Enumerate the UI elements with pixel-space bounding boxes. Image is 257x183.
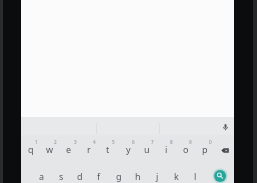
staticText: 1 <box>35 139 38 145</box>
staticText: i <box>165 143 168 155</box>
button[interactable]: g <box>110 168 128 183</box>
button[interactable]: l <box>186 168 204 183</box>
button[interactable]: j <box>148 168 166 183</box>
button[interactable]: w <box>41 141 59 157</box>
staticText: t <box>106 143 110 155</box>
staticText: u <box>144 143 150 155</box>
button[interactable]: 8 <box>162 134 180 150</box>
button[interactable]: p <box>196 141 214 157</box>
staticText: f <box>97 170 101 182</box>
staticText: q <box>28 143 34 155</box>
button[interactable]: t <box>99 141 117 157</box>
button[interactable]: k <box>167 168 185 183</box>
button[interactable] <box>21 117 234 135</box>
staticText: 2 <box>54 139 57 145</box>
button[interactable]: 4 <box>85 134 103 150</box>
staticText: 3 <box>74 139 77 145</box>
staticText: h <box>135 170 141 182</box>
button[interactable]: 7 <box>143 134 161 150</box>
button[interactable]: f <box>90 168 108 183</box>
button[interactable]: o <box>177 141 195 157</box>
button[interactable]: a <box>33 168 51 183</box>
staticText: 0 <box>209 139 212 145</box>
staticText: 5 <box>112 139 115 145</box>
staticText: 6 <box>132 139 135 145</box>
button[interactable]: u <box>138 141 156 157</box>
button[interactable]: 6 <box>124 134 142 150</box>
staticText: l <box>194 170 197 182</box>
staticText: j <box>156 170 159 182</box>
button[interactable]: 9 <box>181 134 199 150</box>
staticText: 8 <box>170 139 173 145</box>
staticText: s <box>59 170 64 182</box>
button[interactable]: 2 <box>46 134 64 150</box>
button[interactable] <box>220 122 231 133</box>
button[interactable]: 1 <box>27 134 45 150</box>
button[interactable]: 5 <box>104 134 122 150</box>
button[interactable]: h <box>129 168 147 183</box>
button[interactable] <box>211 168 228 183</box>
staticText: w <box>46 143 54 155</box>
button[interactable]: 3 <box>66 134 84 150</box>
staticText: y <box>126 143 131 155</box>
staticText: k <box>174 170 179 182</box>
staticText: 9 <box>189 139 192 145</box>
button[interactable]: 0 <box>201 134 219 150</box>
button[interactable]: r <box>80 141 98 157</box>
staticText: g <box>116 170 122 182</box>
staticText: 4 <box>93 139 96 145</box>
button[interactable]: s <box>52 168 70 183</box>
staticText: o <box>183 143 189 155</box>
button[interactable]: y <box>119 141 137 157</box>
button[interactable]: d <box>71 168 89 183</box>
button[interactable] <box>219 146 231 155</box>
button[interactable]: i <box>157 141 175 157</box>
staticText: e <box>66 143 72 155</box>
button[interactable]: q <box>22 141 40 157</box>
staticText: r <box>87 143 91 155</box>
staticText: 7 <box>151 139 154 145</box>
staticText: p <box>202 143 208 155</box>
button[interactable]: e <box>60 141 78 157</box>
staticText: d <box>77 170 83 182</box>
staticText: a <box>39 170 45 182</box>
